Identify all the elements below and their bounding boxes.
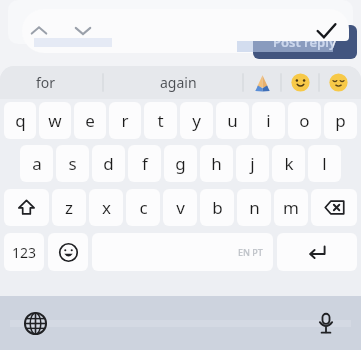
button[interactable]: r [109,102,141,139]
button[interactable]: j [236,145,269,182]
staticText: s [68,152,77,175]
button[interactable]: g [164,145,197,182]
staticText: c [139,196,148,219]
staticText: i [266,109,271,132]
staticText: r [121,109,129,132]
button[interactable]: for [36,73,56,92]
staticText: f [142,152,148,175]
button[interactable]: x [89,189,123,226]
staticText: d [103,152,114,175]
staticText: n [249,196,260,219]
button[interactable]: Post reply [253,25,357,59]
staticText: v [176,196,185,219]
button[interactable]: z [52,189,86,226]
staticText: e [85,109,95,132]
staticText: l [322,152,327,175]
button[interactable]: m [274,189,308,226]
staticText: q [15,109,26,132]
staticText: w [48,109,62,132]
button[interactable]: f [128,145,161,182]
button[interactable]: Emoji [48,233,88,271]
staticText: h [211,152,222,175]
staticText: z [65,196,73,219]
button[interactable]: Folded hands emoji [253,73,272,92]
staticText: k [284,152,294,175]
staticText: EN PT [238,246,263,258]
button[interactable]: i [252,102,285,139]
button[interactable]: k [272,145,305,182]
button[interactable]: s [56,145,89,182]
button[interactable]: u [216,102,249,139]
button[interactable]: h [200,145,233,182]
button[interactable]: a [20,145,53,182]
button[interactable]: y [180,102,213,139]
staticText: j [250,152,255,175]
button[interactable]: again [160,73,197,92]
button[interactable]: v [163,189,197,226]
button[interactable]: Change language [20,308,50,338]
staticText: a [32,152,42,175]
staticText: y [192,109,201,132]
staticText: u [227,109,238,132]
button[interactable]: o [288,102,321,139]
staticText: p [335,109,346,132]
staticText: t [157,109,164,132]
button[interactable]: p [324,102,357,139]
button[interactable]: Next [70,18,96,44]
staticText: m [283,196,299,219]
button[interactable]: Enter [277,233,357,271]
button[interactable]: Voice input [311,308,341,338]
staticText: 123 [12,243,37,262]
button[interactable]: 123 [4,233,44,271]
button[interactable]: e [74,102,106,139]
button[interactable]: n [237,189,271,226]
button[interactable]: Relieved emoji [329,73,348,92]
button[interactable]: q [4,102,36,139]
button[interactable]: t [144,102,177,139]
staticText: g [175,152,186,175]
button[interactable]: Previous [26,18,52,44]
staticText: x [102,196,111,219]
button[interactable]: w [39,102,71,139]
button[interactable]: Space [92,233,273,271]
staticText: o [299,109,310,132]
button[interactable]: b [200,189,234,226]
staticText: b [212,196,223,219]
button[interactable]: c [126,189,160,226]
button[interactable]: Done [313,18,339,44]
button[interactable]: l [308,145,341,182]
button[interactable]: Shift [4,189,49,226]
button[interactable]: Backspace [311,189,357,226]
staticText: Post reply [273,33,337,51]
button[interactable]: Smiling emoji [291,73,310,92]
button[interactable]: d [92,145,125,182]
